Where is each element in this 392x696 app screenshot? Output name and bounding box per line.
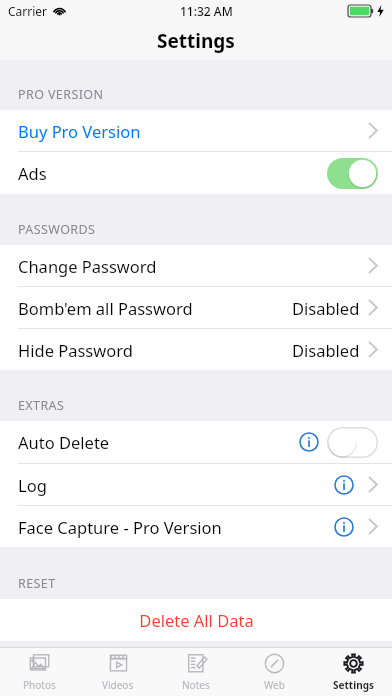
staticText: PASSWORDS (18, 221, 96, 238)
staticText: Carrier (8, 3, 48, 19)
staticText: Disabled (292, 339, 360, 361)
staticText: 11:32 AM (180, 3, 233, 19)
other: More info about Log (334, 475, 354, 495)
other: More info about Face Capture - Pro Versi… (334, 517, 354, 537)
other: More info about Auto Delete (299, 432, 319, 452)
button[interactable]: Face Capture - Pro Version (0, 506, 392, 547)
staticText: Log (18, 474, 47, 496)
staticText: Bomb'em all Password (18, 297, 193, 319)
staticText: Web (264, 678, 285, 692)
staticText: Disabled (292, 297, 360, 319)
button[interactable]: Auto Delete (0, 421, 392, 463)
staticText: PRO VERSION (18, 86, 104, 103)
staticText: Settings (157, 28, 235, 54)
staticText: Auto Delete (18, 431, 110, 453)
button[interactable]: Web (235, 648, 313, 696)
button[interactable]: Bomb'em all Password (0, 287, 392, 328)
button[interactable]: Videos (79, 648, 157, 696)
button[interactable]: Ads (0, 152, 392, 194)
button[interactable]: Delete All Data (0, 599, 392, 641)
staticText: RESET (18, 575, 56, 592)
staticText: Photos (23, 678, 56, 692)
staticText: EXTRAS (18, 397, 65, 414)
staticText: Face Capture - Pro Version (18, 516, 222, 538)
button[interactable]: Hide Password (0, 329, 392, 370)
staticText: Ads (18, 162, 47, 184)
staticText: Change Password (18, 255, 157, 277)
staticText: Notes (182, 678, 210, 692)
button[interactable]: Photos (0, 648, 78, 696)
button[interactable]: Log (0, 464, 392, 505)
button[interactable]: Settings (314, 648, 392, 696)
staticText: Buy Pro Version (18, 120, 141, 142)
staticText: Hide Password (18, 339, 133, 361)
button[interactable]: Change Password (0, 245, 392, 286)
staticText: Videos (102, 678, 134, 692)
staticText: Delete All Data (139, 609, 254, 631)
staticText: Settings (333, 678, 374, 692)
button[interactable]: Notes (157, 648, 235, 696)
button[interactable]: Buy Pro Version (0, 110, 392, 151)
